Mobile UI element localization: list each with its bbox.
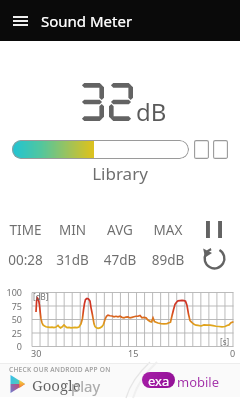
- staticText: 47dB: [96, 251, 144, 269]
- button[interactable]: Reset: [198, 244, 230, 272]
- button[interactable]: Pause: [198, 215, 230, 243]
- staticText: MAX: [144, 221, 192, 239]
- staticText: Google: [32, 375, 81, 395]
- staticText: 30: [31, 347, 42, 359]
- staticText: CHECK OUR ANDROID APP ON: [9, 365, 111, 374]
- staticText: 15: [128, 347, 139, 359]
- staticText: 100: [0, 286, 22, 298]
- button[interactable]: Open navigation menu: [0, 0, 41, 41]
- staticText: Sound Meter: [41, 11, 133, 31]
- staticText: [s]: [220, 336, 230, 347]
- staticText: exa: [148, 372, 170, 388]
- staticText: play: [71, 376, 101, 396]
- staticText: 0: [0, 340, 22, 352]
- staticText: 25: [0, 327, 22, 339]
- staticText: dB: [136, 95, 167, 128]
- staticText: TIME: [2, 221, 49, 239]
- staticText: AVG: [96, 221, 144, 239]
- staticText: [dB]: [33, 291, 49, 302]
- button[interactable]: CHECK OUR ANDROID APP ON: [0, 363, 240, 397]
- staticText: 31dB: [49, 251, 96, 269]
- staticText: 0: [230, 347, 236, 359]
- staticText: 89dB: [144, 251, 192, 269]
- staticText: mobile: [177, 373, 220, 391]
- staticText: 50: [0, 313, 22, 325]
- staticText: Library: [0, 162, 240, 185]
- staticText: 00:28: [2, 251, 49, 269]
- staticText: 75: [0, 300, 22, 312]
- staticText: MIN: [49, 221, 96, 239]
